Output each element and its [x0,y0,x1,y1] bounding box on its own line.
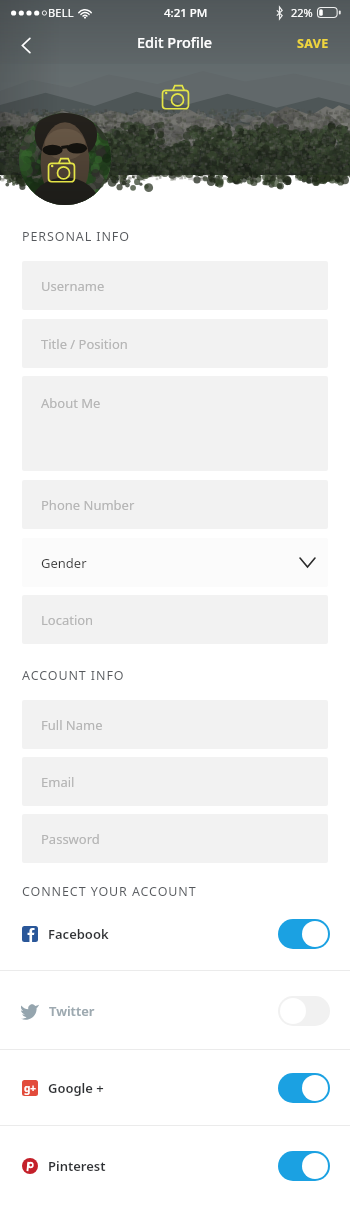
button[interactable]: Email [22,757,328,806]
staticText: Username [41,277,105,295]
button[interactable]: Full Name [22,700,328,749]
button[interactable]: g+ [0,1050,350,1126]
staticText: Twitter [49,1002,95,1020]
button[interactable]: Phone Number [22,480,328,529]
staticText: Pinterest [48,1157,106,1175]
staticText: ACCOUNT INFO [22,667,125,684]
button[interactable]: Toggle on [278,919,330,949]
button[interactable]: Toggle on [278,1073,330,1103]
staticText: 4:21 PM [164,5,208,21]
button[interactable]: SAVE [281,27,350,60]
staticText: Location [41,611,94,629]
staticText: CONNECT YOUR ACCOUNT [22,883,197,897]
staticText: BELL [48,5,74,20]
button[interactable]: Gender [22,538,328,587]
staticText: 22% [291,5,313,20]
staticText: Edit Profile [137,32,213,52]
button[interactable]: Pinterest [0,1126,350,1205]
button[interactable]: Back [8,27,44,63]
staticText: Password [41,830,100,848]
button[interactable]: Password [22,814,328,863]
button[interactable]: Username [22,261,328,310]
staticText: Full Name [41,716,103,734]
staticText: Google + [48,1079,104,1097]
button[interactable]: Change cover photo [155,77,195,117]
staticText: PERSONAL INFO [22,228,130,245]
button[interactable]: Facebook [0,897,350,971]
staticText: Email [41,773,75,791]
staticText: g+ [24,1081,37,1095]
staticText: Phone Number [41,496,135,514]
button[interactable]: Change profile photo [19,113,111,205]
staticText: Facebook [48,925,109,943]
staticText: SAVE [297,35,329,52]
button[interactable]: About Me [22,376,328,471]
button[interactable]: Toggle on [278,1151,330,1181]
staticText: About Me [41,394,101,412]
button[interactable]: Toggle off [278,996,330,1026]
staticText: Title / Position [41,335,128,353]
staticText: Gender [41,554,87,572]
button[interactable]: Title / Position [22,319,328,368]
button[interactable]: Twitter [0,971,350,1050]
button[interactable]: Location [22,595,328,644]
